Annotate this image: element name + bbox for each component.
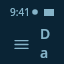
button[interactable]: Menu — [10, 33, 32, 55]
staticText: Dashboard — [40, 24, 54, 64]
staticText: 9:41 — [10, 5, 30, 19]
